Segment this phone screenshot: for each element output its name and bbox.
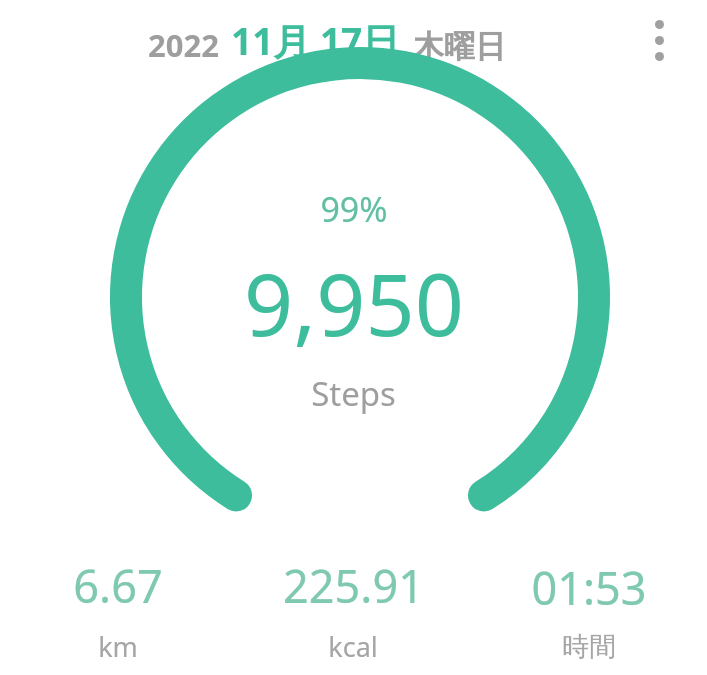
staticText: 01:53 [531,557,647,618]
button[interactable]: More options [639,12,679,68]
button[interactable]: 01:53 [471,555,707,665]
staticText: 2022 [148,24,219,66]
staticText: 11月 17日 [231,15,400,66]
staticText: 9,950 [244,244,464,361]
staticText: 6.67 [73,555,163,616]
staticText: 99% [320,186,388,232]
staticText: kcal [328,628,378,665]
staticText: 時間 [562,630,616,664]
button[interactable]: 225.91 [235,555,471,665]
button[interactable]: 6.67 [0,555,235,665]
button[interactable]: 2022 [148,15,506,66]
staticText: 木曜日 [413,27,506,66]
staticText: Steps [311,371,396,416]
staticText: 225.91 [283,555,424,616]
staticText: km [98,628,138,665]
